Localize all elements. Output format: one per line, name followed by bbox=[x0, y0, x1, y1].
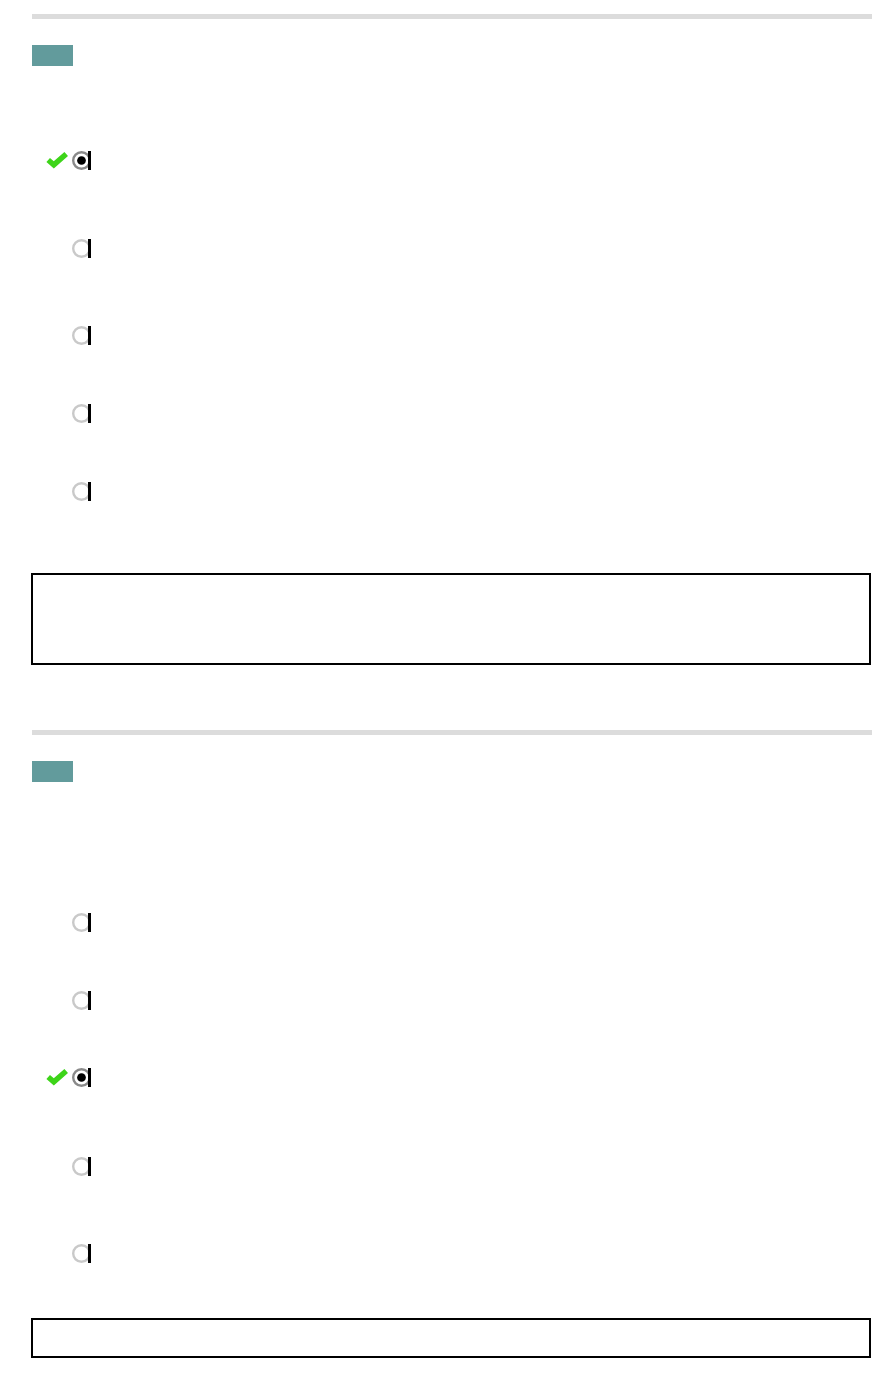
button[interactable]: Option bbox=[0, 910, 872, 934]
button[interactable]: Text answer field bbox=[31, 1318, 871, 1358]
button[interactable]: Option bbox=[0, 1241, 872, 1265]
button[interactable]: Option bbox=[0, 988, 872, 1012]
button[interactable]: Option bbox=[0, 479, 872, 503]
button[interactable]: Option bbox=[0, 323, 872, 347]
button[interactable]: Selected option bbox=[0, 148, 872, 172]
button[interactable]: Option bbox=[0, 236, 872, 260]
button[interactable]: Option bbox=[0, 401, 872, 425]
button[interactable]: Option bbox=[0, 1154, 872, 1178]
button[interactable]: Selected option bbox=[0, 1065, 872, 1089]
button[interactable]: Text answer field bbox=[31, 573, 871, 665]
